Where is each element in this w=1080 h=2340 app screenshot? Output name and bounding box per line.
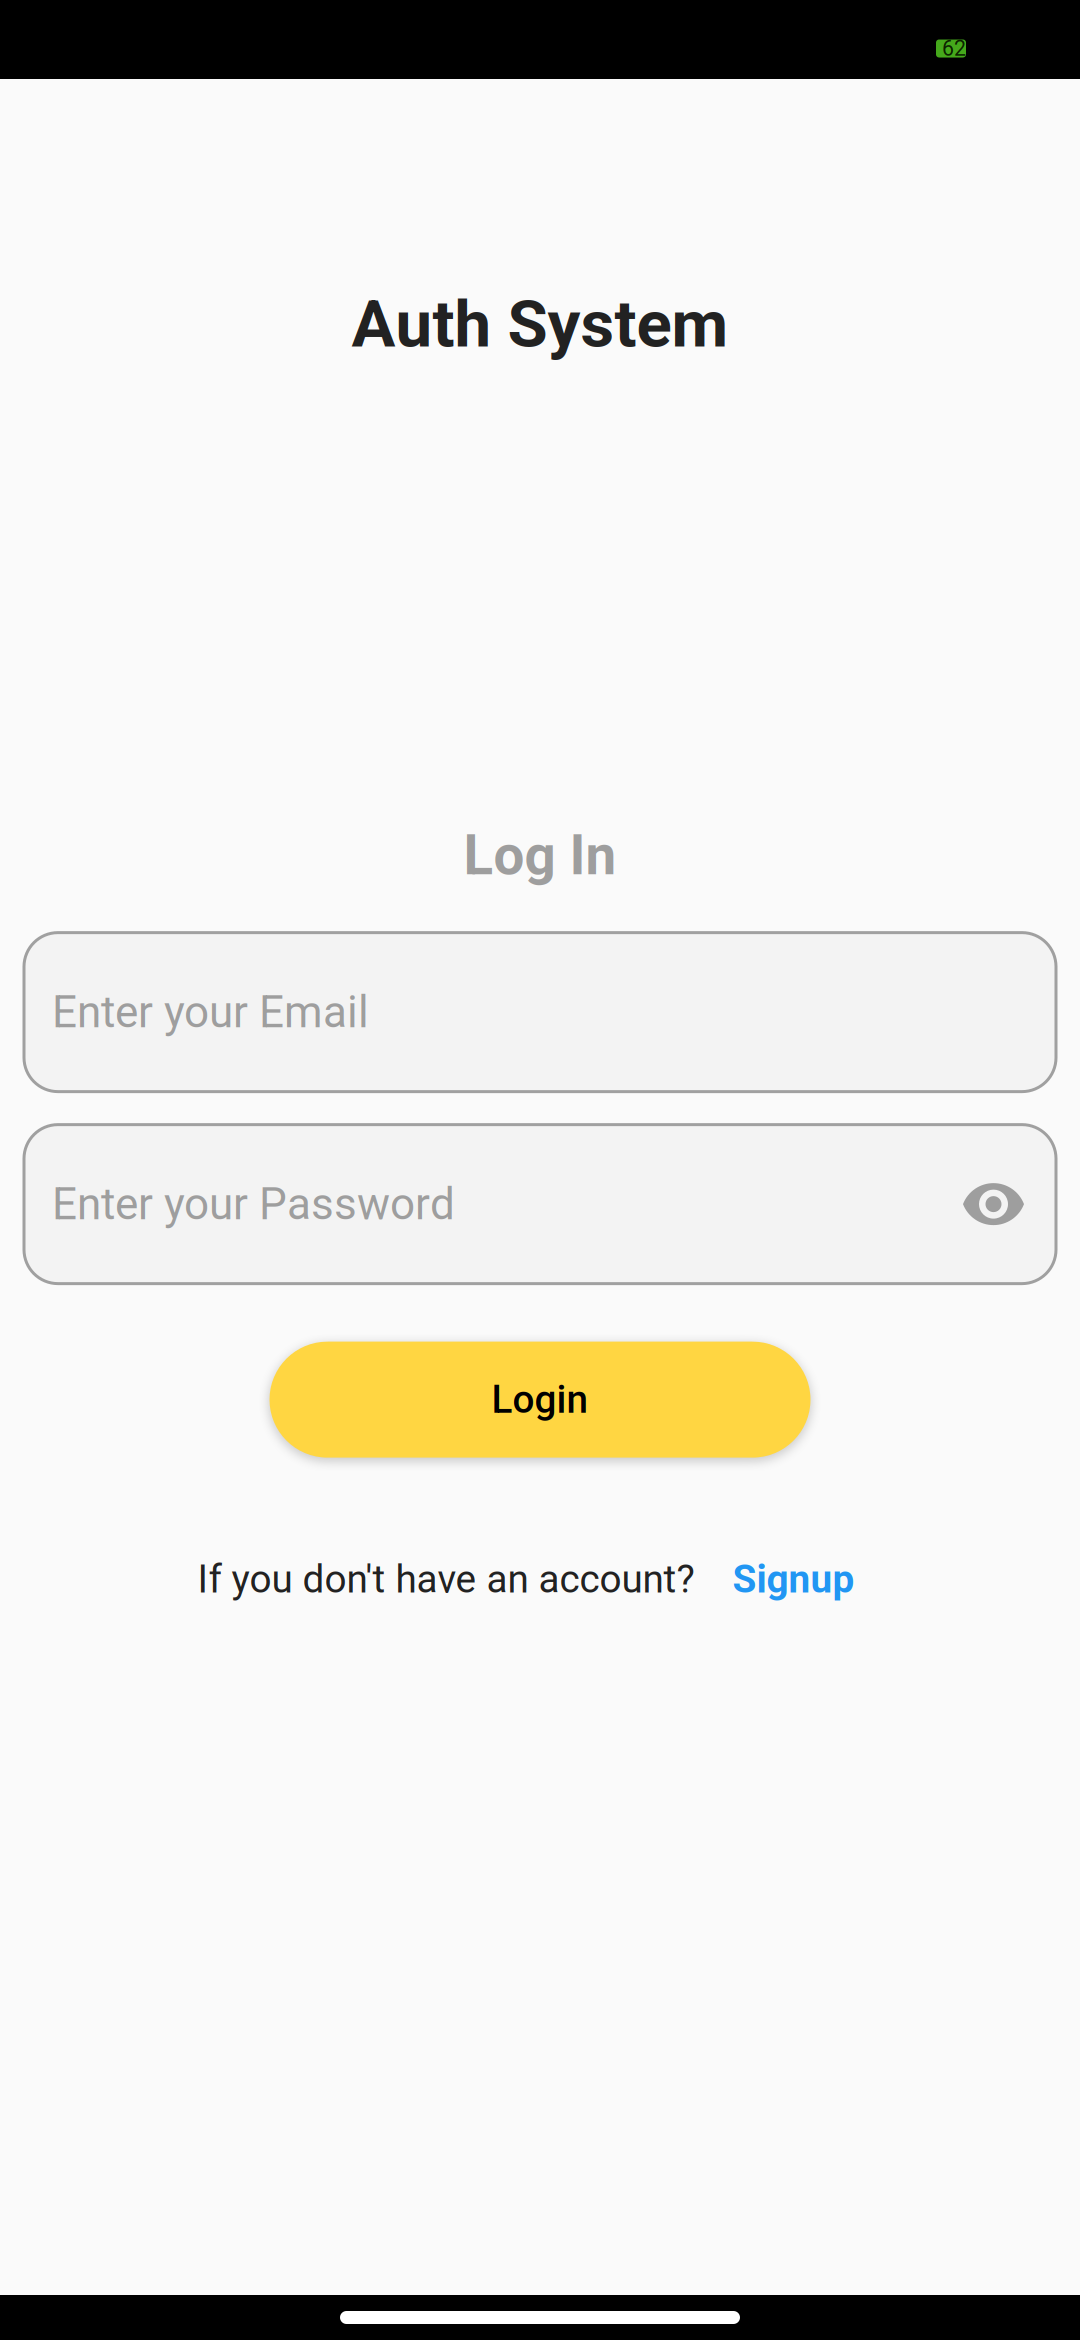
button[interactable]: Enter your Password [24,1125,1056,1284]
staticText: Log In [463,824,616,888]
staticText: Enter your Password [52,1178,455,1230]
staticText: If you don't have an account? [197,1557,694,1602]
button[interactable]: Login [269,1342,810,1458]
button[interactable]: Enter your Email [24,933,1056,1092]
staticText: 62 [942,36,966,61]
staticText: Login [491,1377,588,1422]
staticText: Auth System [351,286,728,363]
staticText: Signup [732,1557,854,1602]
button[interactable]: Signup [732,1557,854,1602]
staticText: Enter your Email [52,986,369,1038]
